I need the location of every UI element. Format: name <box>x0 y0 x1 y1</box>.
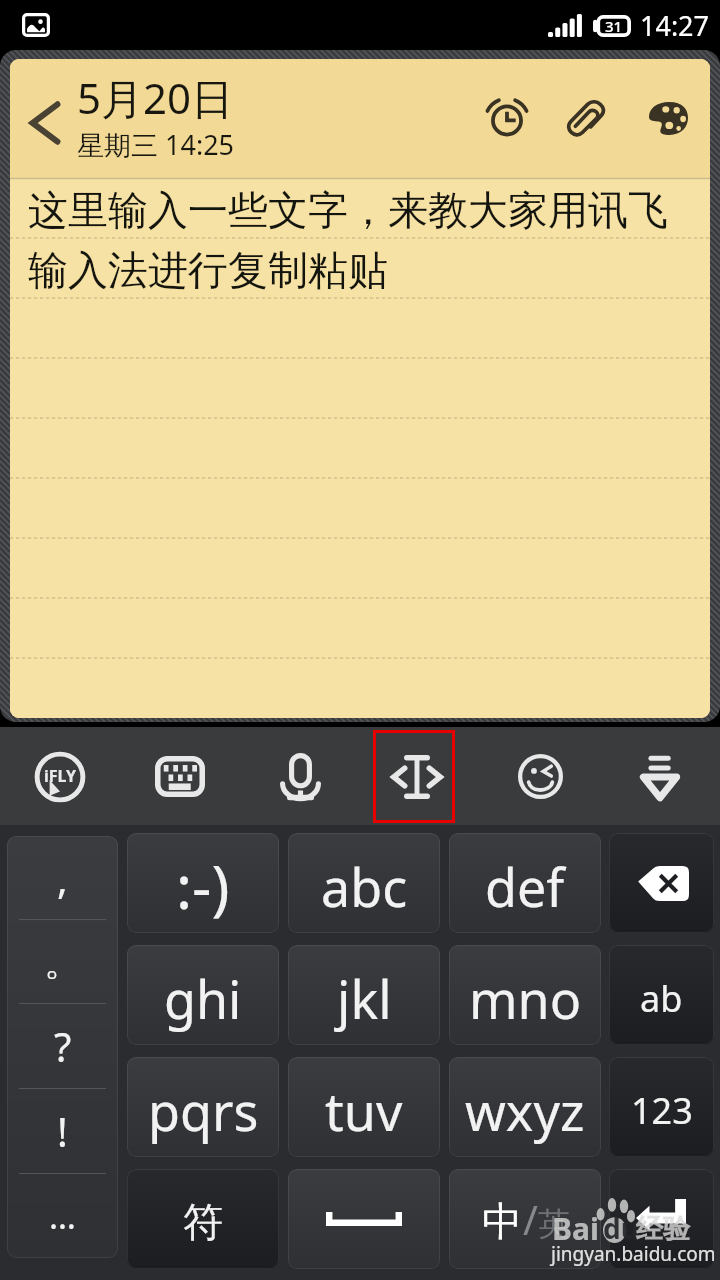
button[interactable]: 符 <box>127 1169 279 1269</box>
button[interactable]: wxyz <box>449 1057 601 1157</box>
button[interactable]: Theme <box>626 59 710 178</box>
button[interactable]: ab <box>609 945 714 1045</box>
button[interactable]: abc <box>288 833 440 933</box>
button[interactable]: ghi <box>127 945 279 1045</box>
staticText: mno <box>469 963 582 1034</box>
button[interactable]: jkl <box>288 945 440 1045</box>
staticText: 。 <box>44 938 82 986</box>
staticText: pqrs <box>148 1075 259 1146</box>
staticText: 经验 <box>636 1212 690 1246</box>
staticText: 123 <box>631 1086 693 1135</box>
button[interactable]: pqrs <box>127 1057 279 1157</box>
staticText: jingyan.baidu.com <box>551 1241 716 1267</box>
staticText: 符 <box>183 1197 223 1247</box>
button[interactable]: 中 <box>449 1169 601 1269</box>
staticText: jkl <box>337 963 392 1034</box>
button[interactable]: :-) <box>127 833 279 933</box>
button[interactable]: mno <box>449 945 601 1045</box>
button[interactable]: def <box>449 833 601 933</box>
staticText: Bai <box>552 1208 599 1249</box>
staticText: , <box>57 851 68 905</box>
staticText: … <box>49 1193 76 1239</box>
staticText: def <box>485 851 565 922</box>
staticText: ghi <box>164 963 242 1034</box>
button[interactable]: Edit cursor <box>373 730 455 823</box>
staticText: du <box>603 1209 639 1247</box>
staticText: 这里输入一些文字，来教大家用讯飞 输入法进行复制粘贴 <box>28 179 710 299</box>
staticText: 5月20日 <box>77 69 234 126</box>
button[interactable]: Emoji <box>499 730 581 823</box>
staticText: abc <box>321 851 408 922</box>
staticText: ! <box>57 1104 68 1158</box>
staticText: wxyz <box>465 1075 585 1146</box>
staticText: 31 <box>605 16 623 36</box>
staticText: 英 <box>538 1204 570 1244</box>
button[interactable]: Keyboard <box>139 730 221 823</box>
button[interactable]: tuv <box>288 1057 440 1157</box>
button[interactable]: Attach <box>542 59 626 178</box>
button[interactable]: , <box>7 836 118 1258</box>
button[interactable]: iFly assistant <box>19 730 101 823</box>
button[interactable]: SPACE <box>288 1169 440 1269</box>
staticText: ab <box>640 974 683 1023</box>
button[interactable]: DEL <box>609 833 714 933</box>
staticText: tuv <box>325 1075 403 1146</box>
staticText: :-) <box>176 845 230 927</box>
staticText: iFLY <box>44 765 77 787</box>
button[interactable]: Back <box>10 59 79 178</box>
staticText: 星期三 14:25 <box>77 126 235 163</box>
button[interactable]: Reminder <box>458 59 542 178</box>
button[interactable]: Hide keyboard <box>619 730 701 823</box>
button[interactable]: 123 <box>609 1057 714 1157</box>
button[interactable]: Voice input <box>259 730 341 823</box>
staticText: 中 <box>482 1196 522 1246</box>
staticText: ? <box>54 1019 72 1073</box>
staticText: 14:27 <box>640 7 710 44</box>
button[interactable]: ENTER <box>609 1169 714 1269</box>
staticText: / <box>523 1192 538 1246</box>
